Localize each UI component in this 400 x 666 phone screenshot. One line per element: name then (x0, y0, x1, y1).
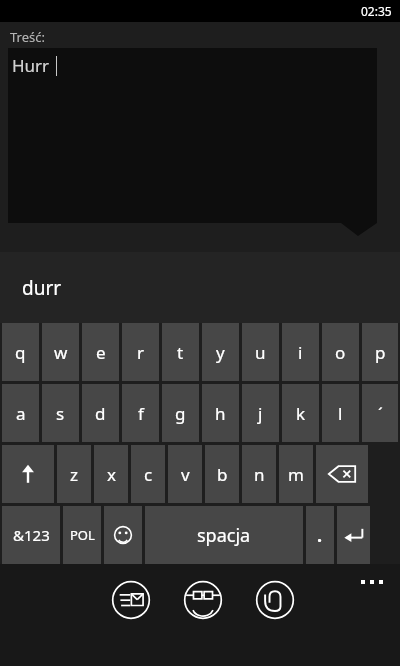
button[interactable]: v (168, 445, 202, 503)
button[interactable]: w (42, 323, 79, 381)
button[interactable]: t (162, 323, 199, 381)
button[interactable]: r (122, 323, 159, 381)
staticText: w (54, 341, 68, 364)
button[interactable]: g (162, 384, 199, 442)
button[interactable]: Attach (255, 580, 295, 620)
button[interactable]: e (82, 323, 119, 381)
staticText: q (15, 341, 26, 364)
button[interactable]: j (242, 384, 279, 442)
button[interactable]: n (242, 445, 276, 503)
staticText: f (138, 402, 144, 425)
button[interactable]: durr (0, 252, 400, 323)
button[interactable]: b (205, 445, 239, 503)
button[interactable]: a (2, 384, 39, 442)
staticText: i (298, 341, 303, 364)
button[interactable]: Send (111, 580, 151, 620)
staticText: o (335, 341, 346, 364)
button[interactable]: x (94, 445, 128, 503)
button[interactable]: p (362, 323, 398, 381)
staticText: r (137, 341, 145, 364)
button[interactable]: z (57, 445, 91, 503)
button[interactable]: More options (352, 570, 392, 594)
button[interactable]: Enter (337, 506, 370, 564)
staticText: n (254, 463, 265, 486)
staticText: Hurr (12, 54, 50, 77)
button[interactable]: u (242, 323, 279, 381)
staticText: b (217, 463, 228, 486)
staticText: POL (70, 526, 95, 544)
staticText: l (338, 402, 343, 425)
button[interactable]: i (282, 323, 319, 381)
staticText: ´ (378, 402, 383, 425)
staticText: c (144, 463, 153, 486)
staticText: spacja (197, 523, 251, 548)
button[interactable]: Emoji (104, 506, 142, 564)
button[interactable]: s (42, 384, 79, 442)
staticText: m (288, 463, 304, 486)
button[interactable]: k (282, 384, 319, 442)
staticText: d (95, 402, 106, 425)
button[interactable]: m (279, 445, 313, 503)
staticText: h (215, 402, 226, 425)
button[interactable]: d (82, 384, 119, 442)
staticText: y (216, 341, 225, 364)
button[interactable]: c (131, 445, 165, 503)
staticText: Treść: (10, 28, 45, 46)
staticText: v (181, 463, 190, 486)
button[interactable]: o (322, 323, 359, 381)
button[interactable]: POL (63, 506, 101, 564)
staticText: k (296, 402, 306, 425)
button[interactable]: q (2, 323, 39, 381)
staticText: durr (22, 275, 62, 301)
button[interactable]: Backspace (316, 445, 368, 503)
staticText: p (375, 341, 386, 364)
button[interactable]: Shift (2, 445, 54, 503)
staticText: x (107, 463, 116, 486)
button[interactable]: spacja (145, 506, 303, 564)
staticText: u (255, 341, 266, 364)
staticText: g (175, 402, 186, 425)
button[interactable]: h (202, 384, 239, 442)
button[interactable]: &123 (2, 506, 60, 564)
button[interactable]: ´ (362, 384, 398, 442)
staticText: t (177, 341, 184, 364)
staticText: s (56, 402, 65, 425)
staticText: &123 (13, 525, 50, 545)
staticText: . (317, 523, 323, 548)
button[interactable]: f (122, 384, 159, 442)
staticText: z (70, 463, 78, 486)
button[interactable]: l (322, 384, 359, 442)
staticText: a (16, 402, 26, 425)
staticText: j (258, 402, 263, 425)
button[interactable]: y (202, 323, 239, 381)
button[interactable]: . (306, 506, 334, 564)
staticText: 02:35 (361, 3, 392, 19)
button[interactable]: Emoji (183, 580, 223, 620)
staticText: e (96, 341, 106, 364)
